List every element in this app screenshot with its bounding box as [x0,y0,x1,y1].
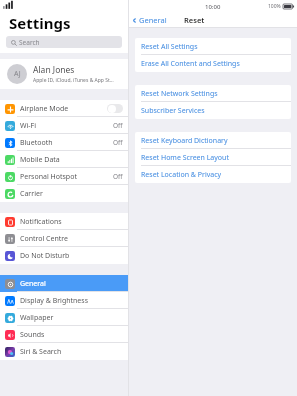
staticText: Apple ID, iCloud, iTunes & App St… [33,77,114,84]
button[interactable]: Reset Keyboard Dictionary [135,132,291,149]
staticText: Siri & Search [20,347,62,357]
staticText: Off [113,121,123,130]
button[interactable]: Airplane Mode [0,100,128,117]
button[interactable]: Siri & Search [0,343,128,360]
staticText: Airplane Mode [20,104,69,114]
button[interactable]: AJ [0,59,128,89]
button[interactable]: Sounds [0,326,128,343]
staticText: Carrier [20,189,43,199]
button[interactable]: Search [6,36,122,48]
button[interactable]: Mobile Data [0,151,128,168]
staticText: Search [19,38,40,47]
button[interactable]: Reset Home Screen Layout [135,149,291,166]
staticText: Notifications [20,217,62,227]
button[interactable]: Notifications [0,213,128,230]
button[interactable]: Back to General [132,15,167,25]
button[interactable]: Personal Hotspot [0,168,128,185]
staticText: Off [113,138,123,147]
staticText: Reset Keyboard Dictionary [141,136,228,146]
staticText: Wi-Fi [20,121,37,131]
staticText: Reset [184,15,205,25]
button[interactable]: Bluetooth [0,134,128,151]
staticText: Bluetooth [20,138,53,148]
button[interactable]: Erase All Content and Settings [135,55,291,72]
staticText: Erase All Content and Settings [141,59,240,69]
staticText: Sounds [20,330,45,340]
staticText: Reset Location & Privacy [141,170,222,180]
staticText: Reset Home Screen Layout [141,153,229,163]
button[interactable]: Reset Location & Privacy [135,166,291,183]
staticText: Reset All Settings [141,42,198,52]
staticText: Subscriber Services [141,106,205,116]
staticText: Personal Hotspot [20,172,77,182]
staticText: General [139,15,167,25]
staticText: AJ [14,69,21,79]
staticText: Off [113,172,123,181]
button[interactable]: Reset Network Settings [135,85,291,102]
button[interactable]: Wi-Fi [0,117,128,134]
staticText: Display & Brightness [20,296,89,306]
staticText: Wallpaper [20,313,54,323]
button[interactable]: Do Not Disturb [0,247,128,264]
staticText: Control Centre [20,234,69,244]
staticText: 100% [268,3,281,10]
staticText: Alan Jones [33,64,75,76]
staticText: General [20,279,46,289]
staticText: Settings [9,13,71,33]
button[interactable]: Wallpaper [0,309,128,326]
button[interactable]: Display & Brightness [0,292,128,309]
staticText: 10:00 [205,3,221,11]
staticText: Mobile Data [20,155,60,165]
button[interactable]: Control Centre [0,230,128,247]
button[interactable]: Reset All Settings [135,38,291,55]
button[interactable]: General [0,275,128,292]
button[interactable]: Carrier [0,185,128,202]
staticText: Do Not Disturb [20,251,70,261]
button[interactable]: Subscriber Services [135,102,291,119]
staticText: Reset Network Settings [141,89,218,99]
